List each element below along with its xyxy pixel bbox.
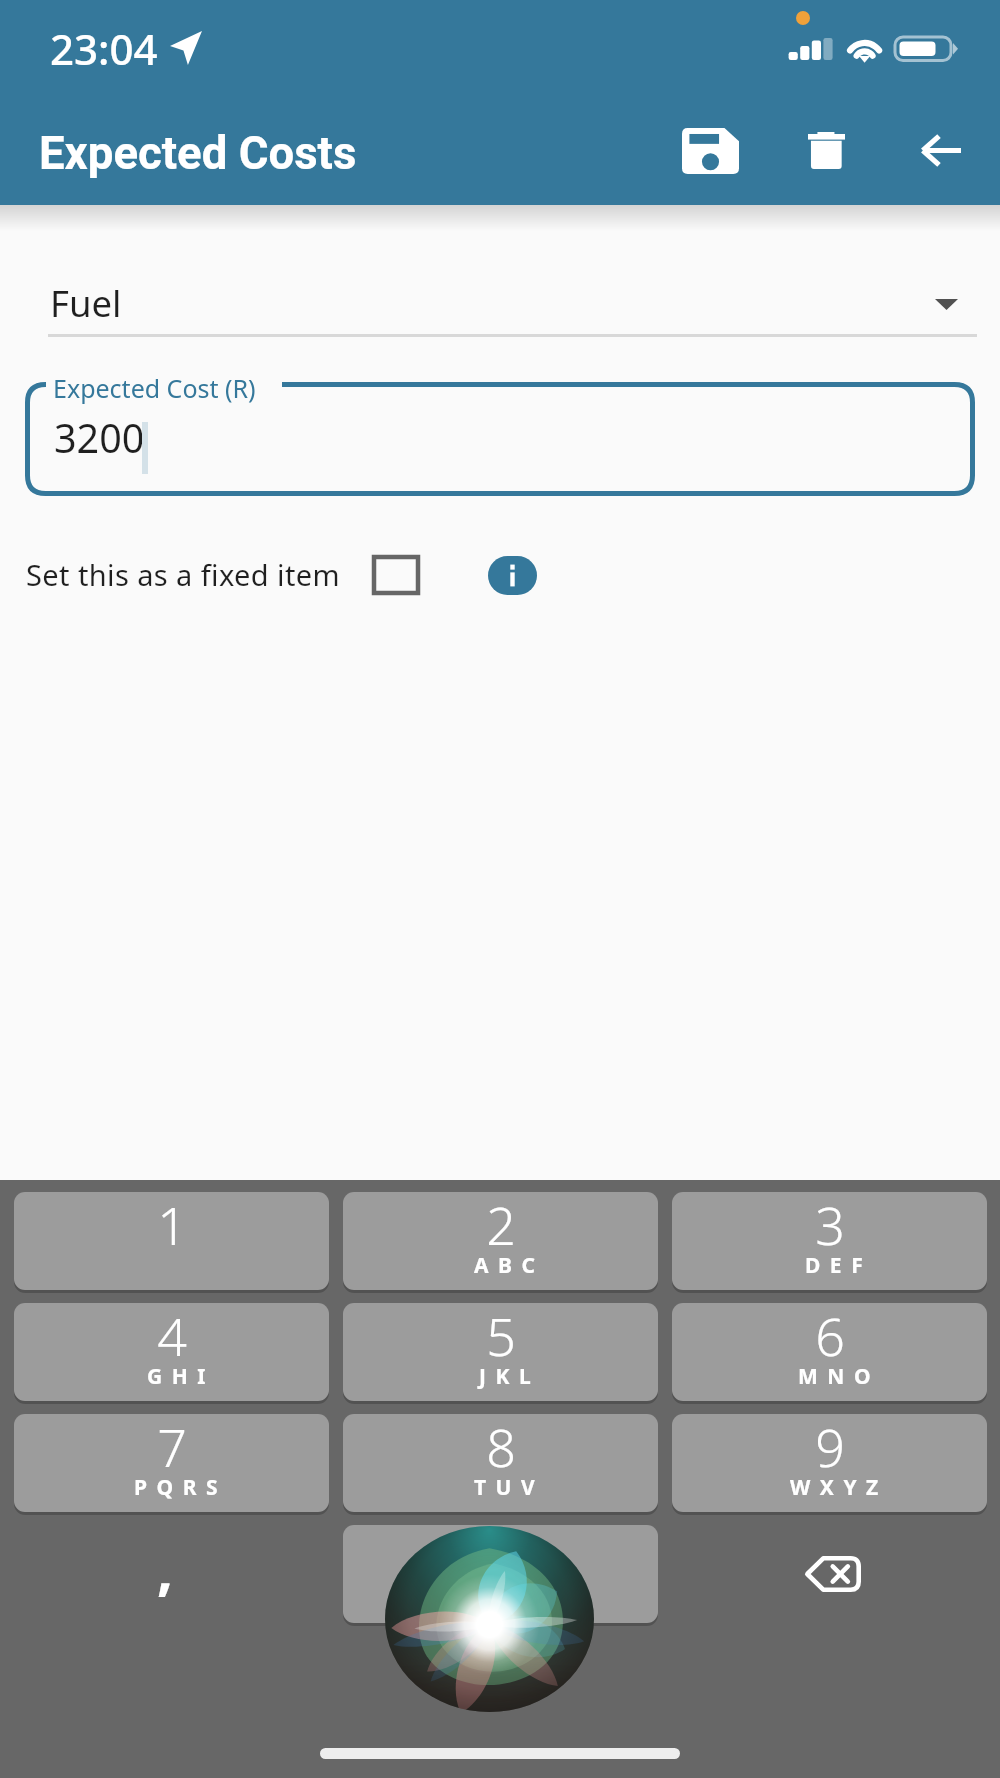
button[interactable]: Fuel [48, 267, 978, 337]
staticText: GHI [147, 1362, 215, 1391]
button[interactable]: 3 [672, 1192, 987, 1290]
button[interactable]: 4 [14, 1303, 329, 1401]
staticText: ABC [474, 1251, 545, 1280]
button[interactable]: , [14, 1525, 329, 1623]
button[interactable]: Info [488, 556, 537, 595]
staticText: 3200 [54, 411, 145, 465]
staticText: 9 [815, 1414, 845, 1482]
button[interactable]: 2 [343, 1192, 658, 1290]
staticText: MNO [798, 1362, 880, 1391]
button[interactable]: 8 [343, 1414, 658, 1512]
button[interactable]: Backspace [672, 1525, 987, 1623]
button[interactable]: 9 [672, 1414, 987, 1512]
staticText: Expected Costs [39, 127, 357, 180]
staticText: 6 [815, 1303, 845, 1371]
staticText: Fuel [50, 278, 122, 328]
staticText: 23:04 [50, 20, 158, 77]
staticText: DEF [805, 1251, 873, 1280]
button[interactable]: Save [660, 110, 760, 190]
staticText: 5 [486, 1303, 516, 1371]
button[interactable]: 6 [672, 1303, 987, 1401]
staticText: 4 [157, 1303, 187, 1371]
staticText: TUV [474, 1473, 545, 1502]
staticText: Set this as a fixed item [26, 555, 341, 594]
button[interactable] [343, 1525, 658, 1623]
staticText: JKL [479, 1362, 541, 1391]
button[interactable]: 7 [14, 1414, 329, 1512]
staticText: 1 [157, 1192, 187, 1260]
button[interactable]: Back [898, 110, 984, 190]
staticText: 7 [157, 1414, 187, 1482]
staticText: 8 [486, 1414, 516, 1482]
staticText: 2 [486, 1192, 516, 1260]
staticText: WXYZ [790, 1473, 888, 1502]
button[interactable]: Set this as a fixed item [374, 557, 418, 593]
staticText: 3 [815, 1192, 845, 1260]
staticText: Expected Cost (R) [53, 371, 256, 405]
staticText: , [157, 1530, 173, 1606]
staticText: PQRS [134, 1473, 227, 1502]
button[interactable]: 1 [14, 1192, 329, 1290]
button[interactable]: 5 [343, 1303, 658, 1401]
button[interactable]: Delete [786, 110, 868, 190]
